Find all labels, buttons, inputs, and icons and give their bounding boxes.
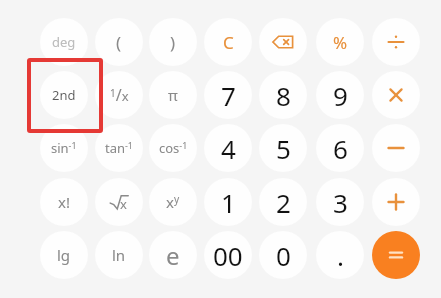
button[interactable]: e — [149, 231, 197, 279]
button[interactable]: 8 — [259, 71, 307, 119]
staticText: 1 — [221, 185, 236, 220]
staticText: 6 — [333, 131, 348, 166]
staticText: ( — [116, 31, 122, 54]
button[interactable]: 5 — [259, 124, 307, 172]
staticText: lg — [57, 245, 71, 265]
staticText: deg — [52, 33, 76, 51]
staticText: 2 — [276, 185, 291, 220]
button[interactable]: ( — [95, 18, 143, 66]
button[interactable]: 1/x — [95, 71, 143, 119]
staticText: xy — [166, 192, 180, 212]
button[interactable]: 4 — [204, 124, 252, 172]
staticText: 9 — [333, 78, 348, 113]
button[interactable]: 0 — [259, 231, 307, 279]
button[interactable]: Divide — [372, 18, 420, 66]
button[interactable]: Minus — [372, 124, 420, 172]
button[interactable]: Multiply — [372, 71, 420, 119]
button[interactable]: % — [316, 18, 364, 66]
button[interactable]: 7 — [204, 71, 252, 119]
button[interactable]: lg — [40, 231, 88, 279]
staticText: sin-1 — [51, 139, 77, 157]
button[interactable]: cos-1 — [149, 124, 197, 172]
staticText: x — [120, 195, 127, 213]
button[interactable]: sin-1 — [40, 124, 88, 172]
button[interactable]: ln — [95, 231, 143, 279]
button[interactable]: 00 — [204, 231, 252, 279]
staticText: 4 — [221, 131, 236, 166]
staticText: x! — [58, 192, 70, 212]
button[interactable]: 2 — [259, 178, 307, 226]
staticText: ) — [170, 31, 176, 54]
button[interactable]: x — [95, 178, 143, 226]
button[interactable]: tan-1 — [95, 124, 143, 172]
staticText: 00 — [213, 238, 243, 273]
staticText: 5 — [276, 131, 291, 166]
button[interactable]: Plus — [372, 178, 420, 226]
staticText: 8 — [276, 78, 291, 113]
button[interactable]: Backspace — [259, 18, 307, 66]
button[interactable]: 1 — [204, 178, 252, 226]
button[interactable]: π — [149, 71, 197, 119]
staticText: 7 — [221, 78, 236, 113]
staticText: 2nd — [52, 86, 76, 104]
staticText: 3 — [333, 185, 348, 220]
staticText: 1/x — [110, 84, 129, 106]
button[interactable]: 9 — [316, 71, 364, 119]
staticText: % — [333, 31, 348, 54]
button[interactable]: deg — [40, 18, 88, 66]
staticText: C — [223, 31, 234, 54]
staticText: tan-1 — [105, 139, 133, 157]
staticText: . — [337, 238, 344, 273]
button[interactable]: . — [316, 231, 364, 279]
button[interactable]: 6 — [316, 124, 364, 172]
staticText: π — [168, 85, 178, 105]
button[interactable]: ) — [149, 18, 197, 66]
button[interactable]: C — [204, 18, 252, 66]
staticText: e — [166, 239, 180, 272]
button[interactable]: x! — [40, 178, 88, 226]
button[interactable]: Equals — [372, 231, 420, 279]
staticText: cos-1 — [159, 139, 188, 157]
staticText: 0 — [276, 238, 291, 273]
staticText: ln — [112, 245, 126, 265]
button[interactable]: 2nd — [40, 71, 88, 119]
button[interactable]: xy — [149, 178, 197, 226]
button[interactable]: 3 — [316, 178, 364, 226]
